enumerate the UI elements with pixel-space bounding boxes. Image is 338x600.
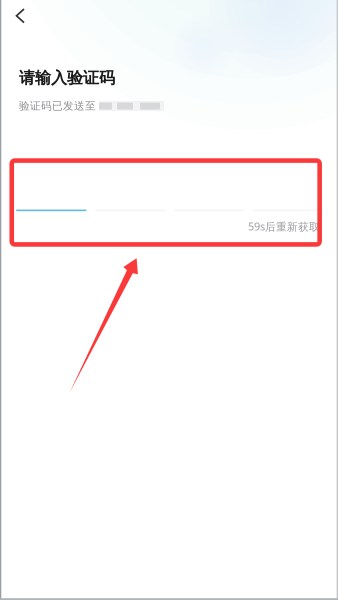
staticText: 59s后重新获取 <box>248 219 320 234</box>
button[interactable]: 返回 <box>0 0 44 32</box>
staticText: 验证码已发送至 <box>19 99 96 112</box>
staticText: 请输入验证码 <box>19 68 115 88</box>
button[interactable]: 59s后重新获取 <box>248 221 320 232</box>
